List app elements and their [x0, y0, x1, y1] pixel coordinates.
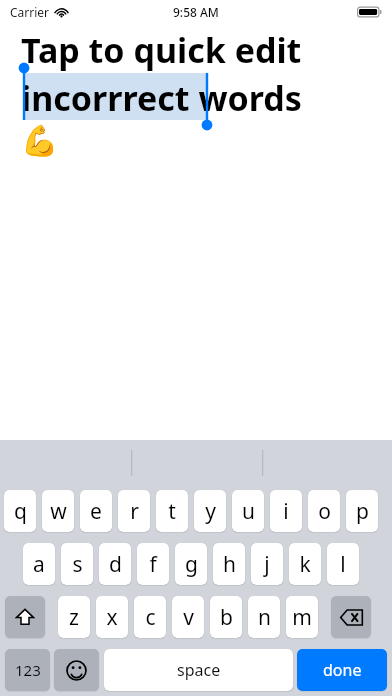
staticText: l [340, 550, 346, 579]
staticText: d [109, 550, 122, 579]
button[interactable]: Backspace [331, 596, 371, 638]
button[interactable]: d [99, 543, 131, 585]
staticText: b [220, 603, 233, 632]
staticText: r [130, 497, 139, 526]
button[interactable]: h [213, 543, 245, 585]
button[interactable]: Emoji keyboard [54, 649, 99, 691]
button[interactable]: Tap to quick edit [0, 0, 392, 430]
staticText: y [205, 497, 216, 526]
staticText: n [258, 603, 271, 632]
button[interactable]: l [327, 543, 359, 585]
button[interactable]: i [270, 490, 302, 532]
staticText: p [356, 497, 369, 526]
button[interactable]: p [346, 490, 378, 532]
staticText: 9:58 AM [173, 4, 219, 20]
staticText: Tap to quick edit [21, 27, 302, 73]
staticText: i [283, 497, 289, 526]
staticText: e [90, 497, 102, 526]
button[interactable]: Shift [5, 596, 45, 638]
staticText: Carrier [10, 4, 50, 20]
button[interactable]: t [156, 490, 188, 532]
staticText: w [50, 497, 67, 526]
button[interactable]: a [23, 543, 55, 585]
button[interactable]: u [232, 490, 264, 532]
button[interactable]: v [172, 596, 204, 638]
staticText: k [299, 550, 311, 579]
staticText: t [168, 497, 176, 526]
button[interactable]: k [289, 543, 321, 585]
button[interactable]: f [137, 543, 169, 585]
staticText: x [106, 603, 118, 632]
button[interactable]: m [286, 596, 318, 638]
staticText: q [14, 497, 27, 526]
button[interactable]: g [175, 543, 207, 585]
button[interactable]: n [248, 596, 280, 638]
button[interactable]: x [96, 596, 128, 638]
button[interactable]: e [80, 490, 112, 532]
staticText: 123 [15, 660, 41, 680]
staticText: space [177, 659, 221, 681]
button[interactable]: q [4, 490, 36, 532]
button[interactable]: s [61, 543, 93, 585]
staticText: c [145, 603, 156, 632]
button[interactable]: j [251, 543, 283, 585]
staticText: done [323, 659, 362, 681]
button[interactable]: 123 [5, 649, 50, 691]
button[interactable]: done [297, 649, 387, 691]
staticText: z [69, 603, 79, 632]
staticText: a [33, 550, 45, 579]
staticText: v [183, 603, 194, 632]
button[interactable]: z [58, 596, 90, 638]
staticText: h [223, 550, 236, 579]
button[interactable]: space [104, 649, 293, 691]
button[interactable]: o [308, 490, 340, 532]
staticText: 💪 [21, 123, 59, 158]
button[interactable]: c [134, 596, 166, 638]
staticText: f [149, 550, 157, 579]
button[interactable]: y [194, 490, 226, 532]
staticText: j [264, 550, 270, 579]
staticText: incorrrect words [21, 75, 302, 121]
button[interactable]: r [118, 490, 150, 532]
staticText: m [292, 603, 312, 632]
staticText: o [318, 497, 331, 526]
button[interactable]: b [210, 596, 242, 638]
staticText: s [72, 550, 83, 579]
staticText: g [185, 550, 198, 579]
button[interactable]: w [42, 490, 74, 532]
staticText: u [242, 497, 255, 526]
